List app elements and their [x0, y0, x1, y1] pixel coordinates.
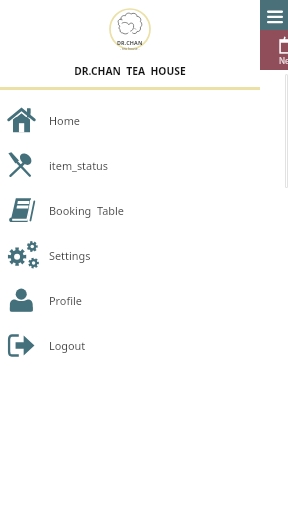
- staticText: DR.CHAN: [117, 39, 143, 46]
- button[interactable]: Open navigation drawer: [267, 10, 283, 24]
- staticText: New: [279, 55, 288, 66]
- staticText: item_status: [49, 158, 109, 173]
- staticText: Settings: [49, 248, 91, 263]
- staticText: Logout: [49, 338, 86, 353]
- staticText: Home: [49, 113, 80, 128]
- staticText: Booking Table: [49, 203, 124, 218]
- button[interactable]: Logout: [0, 323, 260, 368]
- staticText: Profile: [49, 293, 82, 308]
- button[interactable]: Booking Table: [0, 188, 260, 233]
- staticText: - tea house -: [120, 46, 140, 51]
- button[interactable]: Profile: [0, 278, 260, 323]
- button[interactable]: item_status: [0, 143, 260, 188]
- button[interactable]: Settings: [0, 233, 260, 278]
- staticText: DR.CHAN TEA HOUSE: [0, 64, 260, 78]
- button[interactable]: Home: [0, 98, 260, 143]
